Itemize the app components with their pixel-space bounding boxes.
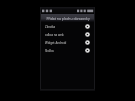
staticText: Zkratka bbox=[45, 25, 56, 29]
button[interactable]: Zkratka bbox=[41, 22, 94, 30]
button[interactable]: odkaz na web bbox=[41, 30, 94, 38]
staticText: Přidat na plochu obrazovky bbox=[46, 16, 90, 21]
staticText: odkaz na web bbox=[45, 33, 64, 37]
other: Složka bbox=[85, 48, 90, 53]
button[interactable]: Widget Android bbox=[41, 38, 94, 46]
other: odkaz na web bbox=[85, 32, 90, 37]
other: Widget Android bbox=[85, 40, 90, 45]
button[interactable]: Složka bbox=[41, 46, 94, 54]
other: Zkratka bbox=[85, 24, 90, 29]
staticText: Složka bbox=[45, 49, 54, 53]
staticText: Widget Android bbox=[45, 41, 67, 45]
